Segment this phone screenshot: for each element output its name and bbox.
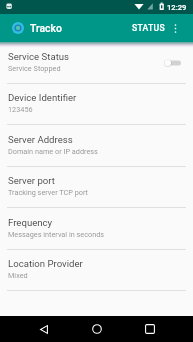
staticText: Service Status	[8, 51, 70, 62]
button[interactable]: STATUS	[129, 18, 168, 38]
button[interactable]: Home	[74, 316, 119, 342]
staticText: 12:29	[167, 3, 187, 12]
staticText: Frequency	[8, 217, 53, 228]
button[interactable]: Server Address	[0, 125, 193, 167]
staticText: Tracking server TCP port	[8, 188, 88, 197]
staticText: Device Identifier	[8, 92, 77, 103]
staticText: Tracko	[30, 22, 62, 34]
staticText: Domain name or IP address	[8, 147, 98, 156]
staticText: 123456	[8, 105, 33, 114]
staticText: Mixed	[8, 271, 28, 280]
staticText: Location Provider	[8, 258, 83, 269]
staticText: Service Stopped	[8, 64, 61, 73]
button[interactable]: Frequency	[0, 208, 193, 250]
button[interactable]: Device Identifier	[0, 84, 193, 125]
button[interactable]: Service toggle	[163, 56, 185, 70]
staticText: Messages interval in seconds	[8, 230, 105, 239]
button[interactable]: Recents	[127, 316, 172, 342]
button[interactable]: Location Provider	[0, 250, 193, 291]
button[interactable]: Back	[21, 316, 66, 342]
staticText: Server Address	[8, 134, 73, 145]
button[interactable]: Service Status	[0, 42, 193, 84]
button[interactable]: Server port	[0, 167, 193, 208]
staticText: STATUS	[132, 23, 165, 33]
button[interactable]: More options	[168, 18, 182, 38]
staticText: Server port	[8, 175, 55, 186]
